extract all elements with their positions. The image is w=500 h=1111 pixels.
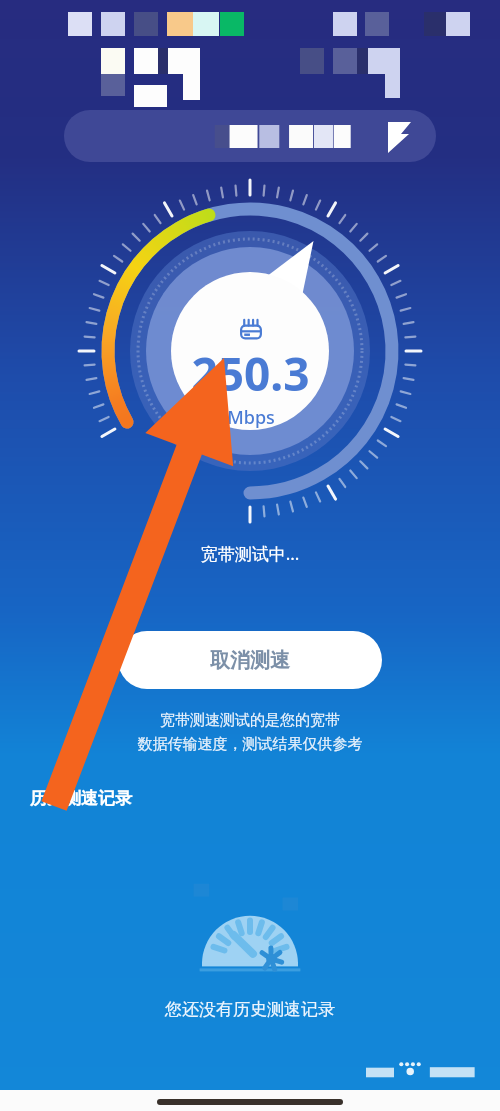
- staticText: Mbps: [227, 405, 275, 430]
- staticText: 您还没有历史测速记录: [0, 999, 500, 1020]
- staticText: 宽带测试中...: [0, 542, 500, 565]
- staticText: 250.3: [191, 342, 310, 405]
- staticText: 数据传输速度，测试结果仅供参考: [0, 735, 500, 754]
- staticText: 历史测速记录: [30, 788, 132, 809]
- staticText: 宽带测速测试的是您的宽带: [0, 711, 500, 730]
- staticText: 取消测速: [210, 648, 290, 673]
- button[interactable]: 取消测速: [118, 631, 382, 689]
- button[interactable]: Search: [64, 110, 436, 162]
